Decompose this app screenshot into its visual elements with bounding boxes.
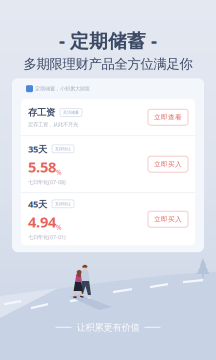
staticText: 定存工资，从此不月光 [28,121,78,128]
button[interactable]: 立即买入 [148,211,188,227]
staticText: % [56,223,62,232]
staticText: 多期限理财产品全方位满足你 [23,56,192,72]
staticText: 存工资 [28,107,55,118]
staticText: % [56,168,62,177]
staticText: 45天 [28,198,47,210]
staticText: - 定期储蓄 - [59,28,157,53]
staticText: 支持转让 [55,201,71,206]
staticText: 让积累更有价值 [76,321,139,333]
button[interactable]: 立即买入 [148,156,188,172]
staticText: 立即查看 [154,113,182,121]
button[interactable]: 立即查看 [148,109,188,125]
staticText: 5.58 [28,157,56,177]
staticText: 35天 [28,143,47,155]
staticText: 4.94 [28,212,56,232]
staticText: 立即买入 [154,160,182,168]
staticText: 灵活储蓄 [63,110,79,115]
staticText: 立即买入 [154,215,182,223]
staticText: 七日年化(07-01) [28,234,66,241]
staticText: 定期储蓄，小积累大财富 [35,85,90,92]
staticText: 支持转让 [55,146,71,151]
staticText: 七日年化(07-08) [28,179,66,186]
